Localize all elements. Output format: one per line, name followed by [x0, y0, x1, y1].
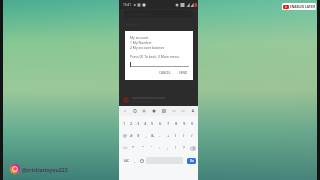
staticText: _ [145, 133, 147, 139]
button[interactable]: @ [121, 130, 128, 142]
button[interactable]: " [138, 142, 147, 154]
staticText: 5 [151, 121, 154, 127]
button[interactable]: # [128, 130, 135, 142]
button[interactable]: Keyboard tool [141, 108, 147, 114]
staticText: ' [151, 145, 152, 151]
staticText: # [130, 133, 133, 139]
staticText: " [142, 145, 144, 151]
staticText: + [167, 133, 170, 139]
staticText: 7 [167, 121, 170, 127]
staticText: , [134, 158, 136, 164]
staticText: ABC [124, 159, 130, 163]
button[interactable]: 9 [180, 118, 188, 130]
button[interactable]: 2 [128, 118, 135, 130]
staticText: 1 [123, 121, 126, 127]
staticText: 4 [144, 121, 147, 127]
button[interactable]: ' [147, 142, 156, 154]
button[interactable]: Keyboard tool [190, 108, 196, 114]
button[interactable]: 4 [142, 118, 149, 130]
staticText: * [132, 145, 135, 151]
button[interactable] [130, 62, 189, 67]
staticText: 2 [130, 121, 133, 127]
button[interactable]: & [149, 130, 156, 142]
staticText: SEND [179, 71, 188, 75]
button[interactable]: / [188, 130, 196, 142]
button[interactable]: * [129, 142, 138, 154]
button[interactable]: Keyboard tool [122, 108, 128, 114]
button[interactable]: ABC [121, 154, 132, 167]
button[interactable]: Keyboard tool [171, 108, 177, 114]
staticText: ? [183, 145, 185, 151]
staticText: ; [167, 145, 169, 151]
button[interactable]: =\< [121, 142, 129, 154]
button[interactable]: Keyboard tool [180, 108, 186, 114]
staticText: 0 [191, 121, 194, 127]
staticText: @cristianoyou223 [22, 166, 68, 173]
staticText: 8 [175, 121, 178, 127]
staticText: @ [123, 133, 127, 139]
button[interactable]: 7 [164, 118, 172, 130]
button[interactable]: Keyboard tool [161, 108, 167, 114]
staticText: ! [175, 145, 177, 151]
button[interactable]: ; [164, 142, 172, 154]
button[interactable]: SEND [177, 70, 190, 76]
button[interactable]: 3 [135, 118, 142, 130]
button[interactable]: Emoji [138, 154, 145, 167]
button[interactable] [119, 95, 198, 104]
staticText: : [159, 145, 161, 151]
staticText: & [151, 133, 155, 139]
button[interactable]: 0 [188, 118, 196, 130]
button[interactable]: 8 [172, 118, 180, 130]
button[interactable]: 6 [156, 118, 164, 130]
staticText: 2 My account balance [130, 45, 165, 50]
staticText: ( [175, 133, 177, 139]
button[interactable]: ! [172, 142, 180, 154]
button[interactable]: ENABLED LATEST [282, 3, 316, 10]
staticText: 9 [183, 121, 186, 127]
staticText: Press 00 To back, 0 Main menu [130, 54, 179, 59]
button[interactable]: ? [180, 142, 188, 154]
staticText: 3 [137, 121, 140, 127]
staticText: =\< [123, 146, 128, 150]
button[interactable]: : [156, 142, 164, 154]
staticText: 10:41 [123, 3, 132, 7]
button[interactable]: $ [135, 130, 142, 142]
staticText: / [191, 133, 193, 139]
button[interactable]: @cristianoyou223 [10, 164, 68, 174]
staticText: Go [190, 159, 194, 163]
staticText: CANCEL [159, 71, 171, 75]
button[interactable]: ) [180, 130, 188, 142]
button[interactable]: Keyboard tool [151, 108, 157, 114]
button[interactable]: - [156, 130, 164, 142]
button[interactable]: 5 [149, 118, 156, 130]
staticText: 6 [159, 121, 162, 127]
staticText: ) [183, 133, 185, 139]
staticText: $ [137, 133, 140, 139]
staticText: ENABLED LATEST [290, 5, 315, 9]
button[interactable]: + [164, 130, 172, 142]
button[interactable]: Backspace [188, 142, 196, 154]
button[interactable]: , [132, 154, 138, 167]
button[interactable]: 1 [121, 118, 128, 130]
button[interactable]: _ [142, 130, 149, 142]
button[interactable]: Go [187, 158, 196, 164]
button[interactable]: CANCEL [157, 70, 173, 76]
button[interactable]: ( [172, 130, 180, 142]
staticText: - [159, 133, 161, 139]
staticText: My account [130, 35, 149, 40]
button[interactable]: Keyboard tool [132, 108, 138, 114]
staticText: 1 My Number [130, 40, 152, 45]
